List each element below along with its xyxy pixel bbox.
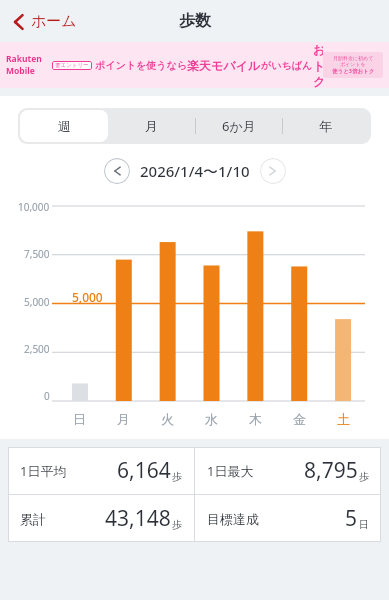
button[interactable]: Rakuten [0,42,389,88]
staticText: ポイントを使うなら [95,59,187,72]
staticText: 歩 [172,470,182,483]
staticText: 0 [44,389,50,401]
staticText: 43,148 [105,504,171,533]
staticText: Mobile [6,65,35,77]
staticText: 5,000 [24,295,50,307]
staticText: 月 [145,118,158,134]
staticText: 5,000 [72,289,103,305]
button[interactable]: 前の週 [104,158,130,184]
staticText: 歩 [359,470,369,483]
staticText: おトク [313,42,323,88]
staticText: がいちばん [261,59,313,72]
button[interactable]: 週 [20,110,108,142]
staticText: 6か月 [222,117,256,135]
button[interactable]: 月 [108,110,195,142]
staticText: 火 [161,411,174,427]
button[interactable]: ホーム [8,8,81,35]
staticText: 日 [73,411,86,427]
button[interactable]: 6か月 [195,110,282,142]
button[interactable]: 次の週 [260,158,286,184]
staticText: 5 [345,504,358,533]
staticText: 2,500 [24,342,50,354]
staticText: 月 [117,411,130,427]
staticText: 日 [359,518,369,531]
staticText: 使うと3倍おトク [332,67,375,75]
staticText: 年 [319,118,332,134]
staticText: 楽天モバイル [187,58,261,73]
staticText: ポイントを [340,61,366,67]
staticText: 1日最大 [207,462,254,480]
button[interactable]: 1日平均 [8,447,194,494]
staticText: 月額料金に初めて [333,55,374,61]
button[interactable]: 目標達成 [195,495,381,542]
staticText: 木 [249,411,262,427]
button[interactable]: 年 [282,110,369,142]
staticText: 2026/1/4〜1/10 [140,161,250,181]
button[interactable]: 1日最大 [195,447,381,494]
staticText: 金 [293,411,306,427]
staticText: 7,500 [24,247,50,259]
staticText: ホーム [31,12,77,31]
staticText: 10,000 [18,200,50,212]
button[interactable]: 累計 [8,495,194,542]
staticText: 土 [337,411,350,427]
staticText: 水 [205,411,218,427]
staticText: 歩数 [179,11,211,31]
staticText: 8,795 [304,456,358,485]
staticText: 歩 [172,518,182,531]
staticText: 1日平均 [20,462,67,480]
staticText: 6,164 [117,456,171,485]
staticText: 累計 [20,511,46,527]
staticText: 週 [58,118,71,134]
staticText: 要エントリー [55,62,89,69]
staticText: 目標達成 [207,511,259,527]
staticText: Rakuten [6,53,42,65]
